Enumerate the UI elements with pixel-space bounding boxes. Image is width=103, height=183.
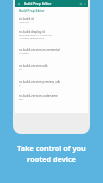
staticText: Take control of you [17,143,86,153]
staticText: ro.build.version.sdk [19,64,48,68]
button[interactable]: ro.build.display.id [15,29,88,47]
staticText: Build Prop Editor [24,1,52,6]
staticText: ro.build.display.id [19,30,45,34]
button[interactable]: More options [83,2,87,6]
button[interactable]: ro.build.version.incremental [15,47,88,63]
staticText: ro.build.version.preview_sdk [19,80,61,84]
staticText: 4178659 release-keys [19,36,45,39]
staticText: 25 [19,67,22,70]
button[interactable]: ro.build.id [15,16,88,29]
button[interactable]: ro.build.version.preview_sdk [15,79,88,93]
staticText: 0 [19,83,21,86]
staticText: ro.build.id [19,17,34,21]
staticText: N2G47H [19,20,29,23]
button[interactable]: ro.build.version.sdk [15,63,88,79]
staticText: ro.build.version.incremental [19,48,60,52]
staticText: bullhead-user 7.1.2 N2G47H [19,33,53,36]
staticText: REL [19,97,24,100]
staticText: rooted device [27,154,76,164]
button[interactable]: ro.build.version.codename [15,93,88,107]
staticText: 4178659 [19,51,30,54]
staticText: Build Prop Editor [19,9,45,13]
button[interactable]: Navigate up [17,2,21,6]
staticText: ro.build.version.codename [19,94,58,98]
button[interactable]: Search [79,2,83,6]
